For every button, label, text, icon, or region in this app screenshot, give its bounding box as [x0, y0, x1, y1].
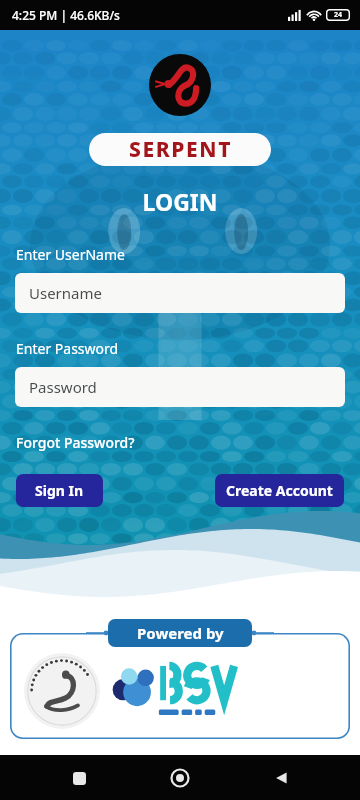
button[interactable]: Recent apps: [57, 756, 101, 800]
staticText: 24: [334, 10, 343, 20]
staticText: Enter Password: [16, 339, 344, 358]
button[interactable]: Username: [15, 273, 345, 313]
staticText: Forgot Password?: [16, 433, 135, 452]
staticText: 4:25 PM | 46.6KB/s: [12, 7, 120, 23]
staticText: Enter UserName: [16, 245, 344, 264]
button[interactable]: SERPENT: [89, 133, 271, 166]
button[interactable]: Forgot Password?: [16, 433, 344, 452]
button[interactable]: Back: [259, 756, 303, 800]
staticText: Create Account: [226, 481, 333, 500]
staticText: Password: [29, 377, 97, 397]
button[interactable]: Password: [15, 367, 345, 407]
button[interactable]: Home: [158, 756, 202, 800]
button[interactable]: Create Account: [215, 474, 344, 507]
staticText: Powered by: [137, 623, 224, 643]
staticText: SERPENT: [129, 135, 232, 164]
staticText: Sign In: [35, 481, 84, 500]
button[interactable]: Powered by: [108, 619, 252, 647]
staticText: Username: [29, 283, 102, 303]
button[interactable]: Sign In: [16, 474, 103, 507]
staticText: LOGIN: [0, 186, 360, 217]
